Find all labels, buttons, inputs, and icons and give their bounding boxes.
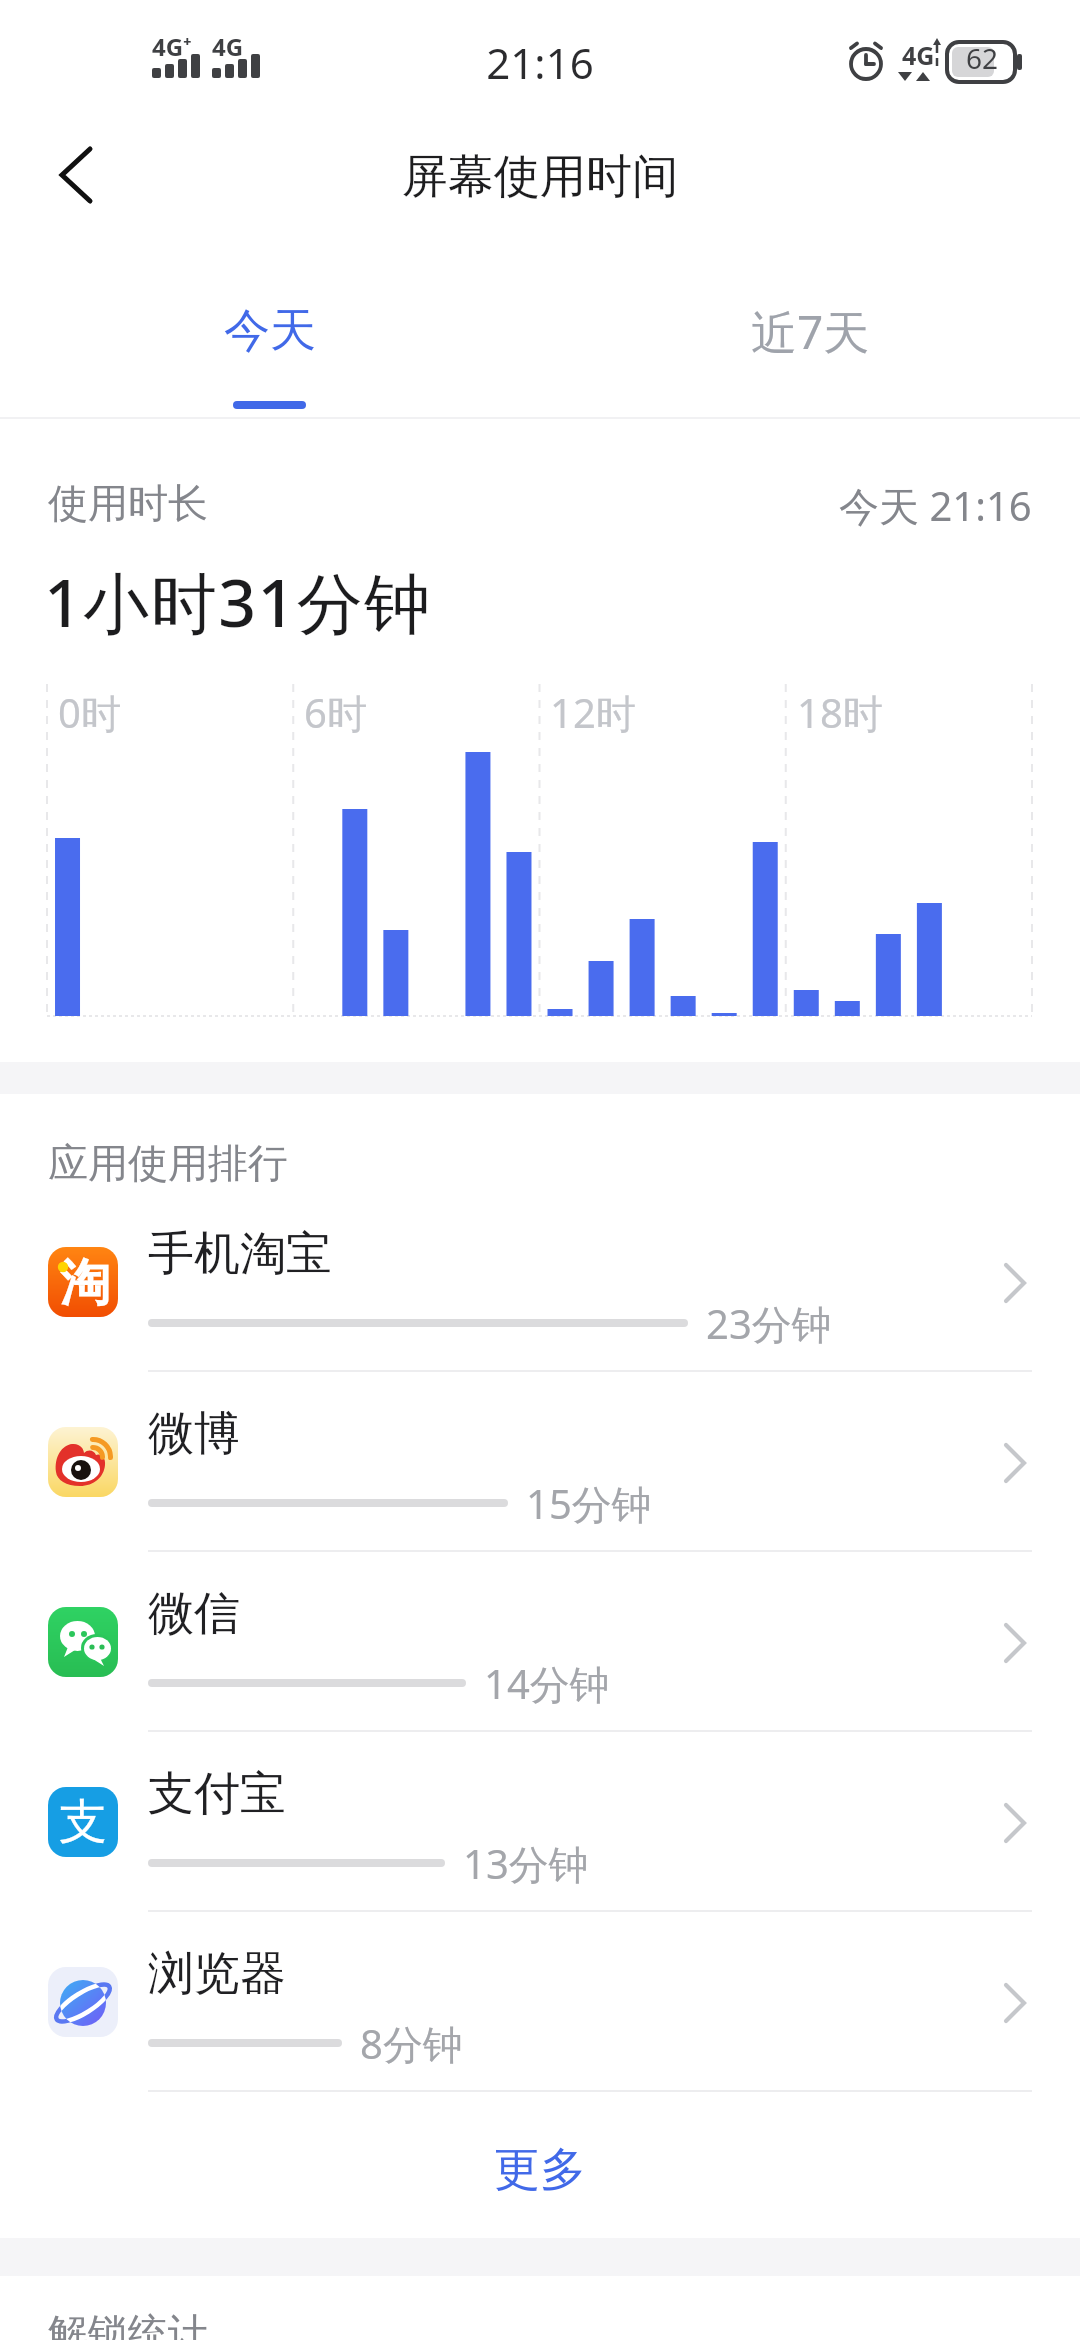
staticText: 6时	[304, 685, 367, 740]
button[interactable]	[40, 135, 120, 215]
staticText: 18时	[797, 685, 883, 740]
staticText: 更多	[494, 2141, 586, 2199]
button[interactable]: 浏览器	[0, 1912, 1080, 2092]
button[interactable]: 近7天	[540, 291, 1080, 371]
staticText: 解锁统计	[48, 2308, 208, 2340]
staticText: 今天 21:16	[839, 478, 1032, 533]
staticText: 今天	[224, 302, 316, 360]
staticText: 支付宝	[148, 1765, 286, 1823]
staticText: 淘	[60, 1252, 110, 1315]
staticText: 近7天	[751, 300, 870, 363]
button[interactable]: 淘	[0, 1192, 1080, 1372]
staticText: 4G	[212, 30, 244, 63]
staticText: 微博	[148, 1405, 240, 1463]
button[interactable]: 微博	[0, 1372, 1080, 1552]
staticText: 屏幕使用时间	[402, 148, 678, 204]
staticText: 15分钟	[526, 1476, 652, 1531]
button[interactable]: 今天	[0, 291, 540, 371]
staticText: 4G⁺	[152, 30, 192, 63]
staticText: 21:16	[486, 34, 594, 82]
staticText: 0时	[58, 685, 121, 740]
button[interactable]: 更多	[440, 2130, 640, 2210]
staticText: 14分钟	[484, 1656, 610, 1711]
staticText: 微信	[148, 1585, 240, 1643]
staticText: 4G	[902, 38, 935, 72]
staticText: 12时	[550, 685, 636, 740]
staticText: 浏览器	[148, 1945, 286, 2003]
staticText: 62	[966, 39, 999, 77]
staticText: 支	[59, 1792, 107, 1852]
staticText: 手机淘宝	[148, 1225, 332, 1283]
staticText: 13分钟	[463, 1836, 589, 1891]
button[interactable]: 支	[0, 1732, 1080, 1912]
button[interactable]: 微信	[0, 1552, 1080, 1732]
staticText: 23分钟	[706, 1296, 832, 1351]
staticText: 8分钟	[360, 2016, 463, 2071]
staticText: 使用时长	[48, 478, 208, 528]
staticText: 应用使用排行	[48, 1138, 288, 1188]
staticText: 1小时31分钟	[44, 556, 432, 646]
